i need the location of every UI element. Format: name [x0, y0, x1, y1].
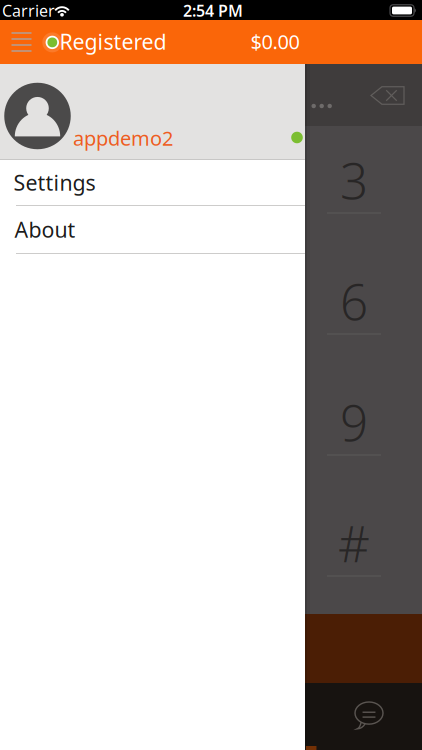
staticText: Settings	[13, 168, 95, 197]
button[interactable]: Account appdemo2	[0, 64, 305, 159]
staticText: 9	[340, 389, 368, 455]
staticText: About	[14, 215, 75, 244]
staticText: Registered	[59, 27, 166, 56]
button[interactable]: Settings	[0, 159, 305, 205]
staticText: appdemo2	[73, 125, 173, 151]
staticText: 6	[340, 268, 368, 334]
button[interactable]: Menu	[4, 27, 38, 57]
staticText: $0.00	[250, 28, 299, 55]
button[interactable]: $0.00	[250, 28, 299, 55]
staticText: Carrier	[2, 0, 55, 21]
staticText: #	[338, 510, 370, 576]
button[interactable]: About	[0, 205, 305, 253]
staticText: 3	[340, 147, 368, 213]
staticText: 2:54 PM	[183, 0, 243, 21]
